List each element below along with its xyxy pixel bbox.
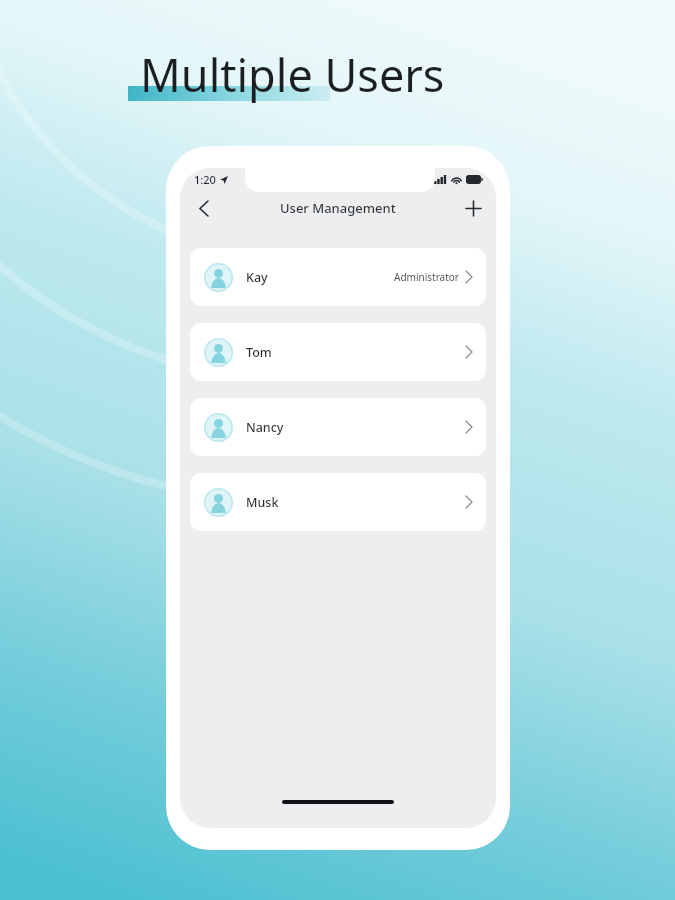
button[interactable]: Add user [456,191,490,225]
button[interactable]: Nancy [190,398,486,456]
button[interactable]: Musk [190,473,486,531]
button[interactable]: Kay [190,248,486,306]
staticText: Kay [246,269,268,286]
staticText: Administrator [394,270,459,284]
staticText: 1:20 [194,172,216,187]
staticText: Multiple Users [140,44,445,105]
staticText: Musk [246,494,279,511]
button[interactable]: Tom [190,323,486,381]
button[interactable]: Back [187,191,221,225]
staticText: User Management [280,199,396,217]
staticText: Tom [246,344,272,361]
staticText: Nancy [246,419,284,436]
